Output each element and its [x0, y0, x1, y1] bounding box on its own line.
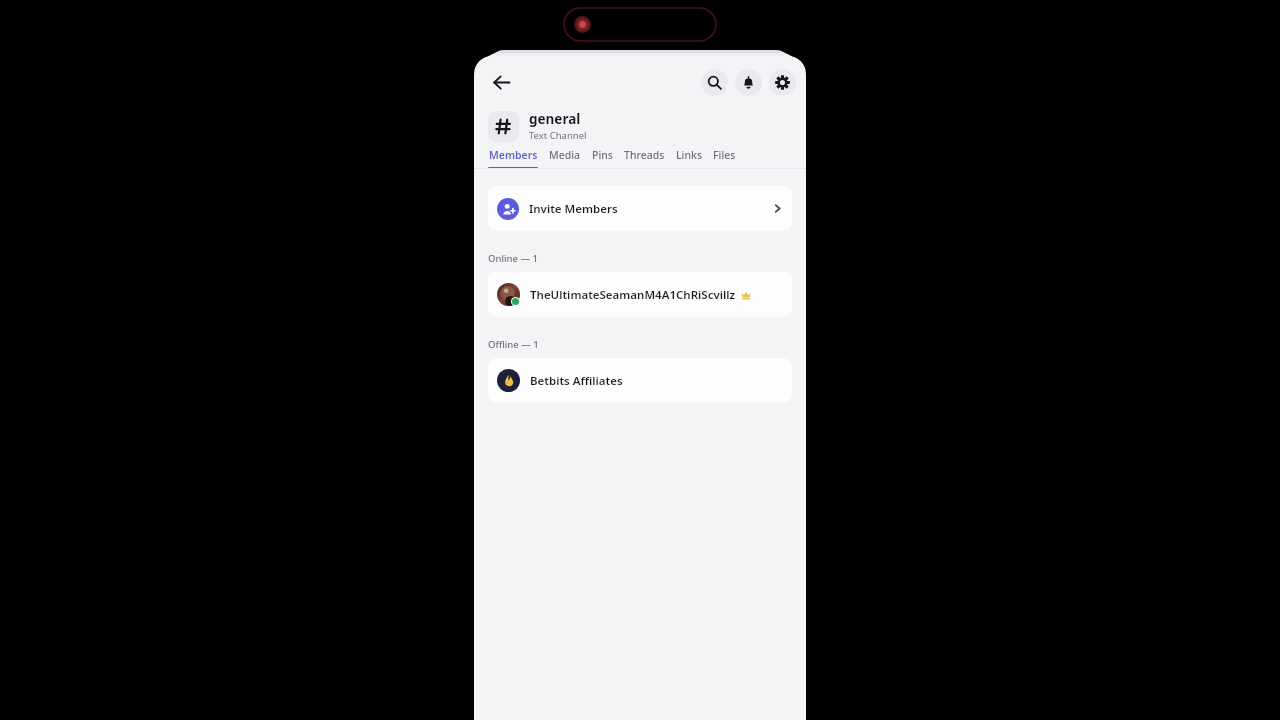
button[interactable]: Media: [549, 148, 592, 169]
staticText: Threads: [624, 148, 665, 162]
staticText: Members: [489, 148, 538, 162]
button[interactable]: Settings: [769, 69, 796, 96]
staticText: Offline — 1: [488, 338, 539, 351]
button[interactable]: Threads: [624, 148, 676, 169]
button[interactable]: Members: [488, 148, 549, 169]
button[interactable]: Links: [676, 148, 713, 169]
button[interactable]: Search: [701, 69, 728, 96]
button[interactable]: Back: [482, 63, 520, 101]
button[interactable]: Notifications: [735, 69, 762, 96]
button[interactable]: Betbits Affiliates: [488, 358, 792, 403]
staticText: Betbits Affiliates: [530, 373, 623, 389]
staticText: TheUltimateSeamanM4A1ChRiScvillz: [530, 287, 736, 303]
staticText: Links: [676, 148, 702, 162]
staticText: Files: [713, 148, 736, 162]
button[interactable]: Invite Members: [488, 186, 792, 231]
staticText: Online — 1: [488, 252, 538, 265]
staticText: general: [529, 110, 581, 128]
button[interactable]: Files: [713, 148, 736, 169]
button[interactable]: TheUltimateSeamanM4A1ChRiScvillz: [488, 272, 792, 317]
button[interactable]: Pins: [592, 148, 624, 169]
staticText: Text Channel: [529, 129, 587, 142]
staticText: Media: [549, 148, 581, 162]
staticText: Invite Members: [529, 201, 618, 217]
staticText: Pins: [592, 148, 613, 162]
